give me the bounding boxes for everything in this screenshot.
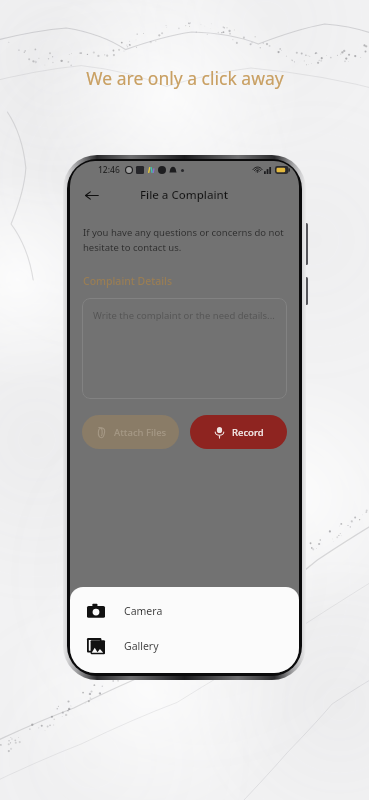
button[interactable]: Gallery [70, 628, 299, 663]
button[interactable]: Camera [70, 593, 299, 628]
staticText: If you have any questions or concerns do… [83, 226, 284, 254]
button[interactable]: Back [76, 180, 106, 210]
button[interactable]: Write the complaint or the need details.… [82, 298, 287, 399]
staticText: We are only a click away [86, 66, 284, 90]
button[interactable]: Record [190, 415, 287, 449]
staticText: Record [232, 426, 264, 439]
staticText: 12:46 [98, 164, 120, 176]
staticText: Complaint Details [83, 274, 173, 288]
staticText: Write the complaint or the need details.… [93, 309, 275, 322]
staticText: Gallery [124, 639, 159, 653]
button[interactable]: Attach Files [82, 415, 179, 449]
staticText: Camera [124, 604, 163, 618]
staticText: Attach Files [114, 426, 167, 439]
staticText: File a Complaint [140, 187, 229, 203]
